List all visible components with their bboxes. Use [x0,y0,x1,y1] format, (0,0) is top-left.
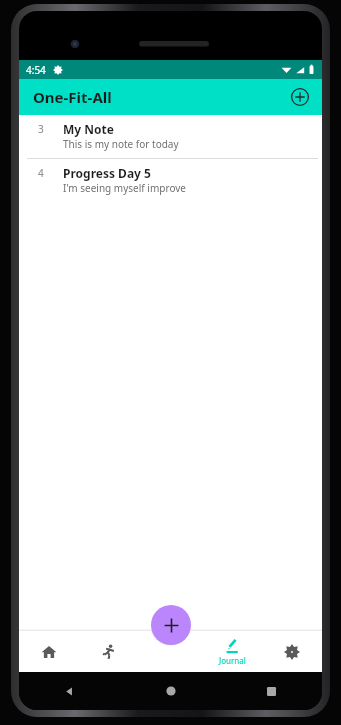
button[interactable]: 3 [19,115,322,158]
staticText: 4:54 [26,63,46,77]
button[interactable]: Workouts [79,631,139,672]
button[interactable]: Add [151,605,191,645]
staticText: I'm seeing myself improve [63,181,186,195]
button[interactable]: Journal [202,631,262,672]
staticText: My Note [63,121,114,137]
button[interactable]: Settings [262,631,322,672]
staticText: Journal [219,655,246,666]
staticText: One-Fit-All [33,87,112,107]
staticText: This is my note for today [63,137,179,151]
button[interactable]: Home [19,631,79,672]
button[interactable]: Add entry [287,84,313,110]
button[interactable]: 4 [19,159,322,202]
staticText: Progress Day 5 [63,165,151,181]
staticText: 3 [38,122,44,136]
staticText: 4 [38,166,44,180]
